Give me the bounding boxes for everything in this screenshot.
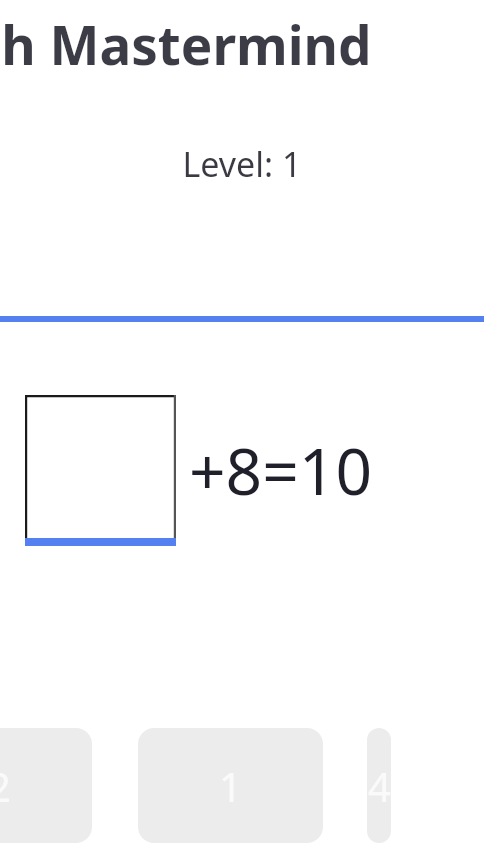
staticText: Level: 1 — [0, 141, 484, 187]
button[interactable]: 4 — [367, 728, 391, 843]
staticText: 4 — [368, 759, 391, 813]
staticText: +8=10 — [189, 427, 373, 514]
staticText: 2 — [0, 759, 11, 813]
button[interactable]: Answer input — [25, 395, 176, 546]
staticText: 1 — [219, 759, 242, 813]
staticText: Math Mastermind — [0, 8, 376, 80]
